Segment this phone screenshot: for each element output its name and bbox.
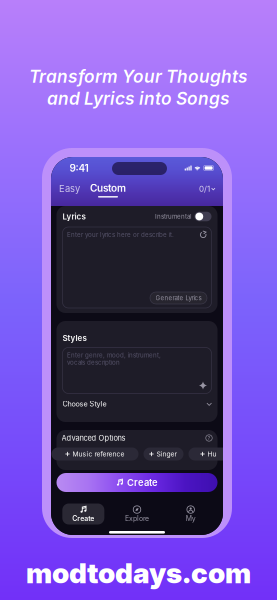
staticText: Hu: [208, 450, 217, 458]
button[interactable]: My: [164, 503, 217, 524]
button[interactable]: Instrumental: [155, 212, 211, 221]
button[interactable]: Singer: [143, 447, 183, 460]
staticText: 0/1: [199, 184, 210, 194]
button[interactable]: Explore: [110, 503, 164, 524]
button[interactable]: Custom: [90, 182, 126, 197]
button[interactable]: Shuffle lyrics: [200, 231, 207, 238]
staticText: Generate Lyrics: [155, 294, 201, 302]
staticText: 9:41: [69, 162, 88, 174]
staticText: Styles: [62, 333, 86, 343]
button[interactable]: Create: [56, 503, 110, 524]
button[interactable]: 0/1: [199, 182, 215, 194]
staticText: modtodays.com: [26, 556, 251, 590]
button[interactable]: About advanced options: [205, 434, 212, 441]
staticText: Singer: [157, 450, 178, 458]
staticText: Transform Your Thoughts: [29, 66, 248, 87]
staticText: Lyrics: [62, 212, 85, 221]
staticText: Advanced Options: [61, 433, 125, 442]
button[interactable]: Suggest styles: [199, 381, 207, 389]
staticText: Enter genre, mood, instrument, vocals de…: [67, 351, 161, 366]
staticText: and Lyrics into Songs: [47, 88, 230, 109]
staticText: Custom: [90, 182, 126, 194]
staticText: My: [186, 514, 196, 523]
staticText: Choose Style: [62, 400, 106, 408]
staticText: ?: [207, 435, 210, 441]
button[interactable]: Music reference: [51, 447, 138, 460]
button[interactable]: Easy: [59, 182, 80, 194]
staticText: Create: [127, 477, 158, 488]
staticText: Easy: [59, 183, 80, 194]
staticText: Enter your lyrics here or describe it.: [67, 231, 174, 238]
staticText: Create: [72, 514, 94, 523]
staticText: Music reference: [73, 450, 125, 458]
button[interactable]: Choose Style: [62, 397, 211, 410]
staticText: Instrumental: [155, 213, 191, 220]
button[interactable]: Hu: [188, 447, 228, 460]
button[interactable]: Generate Lyrics: [150, 292, 207, 304]
button[interactable]: Create: [56, 473, 217, 492]
staticText: Explore: [125, 514, 149, 523]
